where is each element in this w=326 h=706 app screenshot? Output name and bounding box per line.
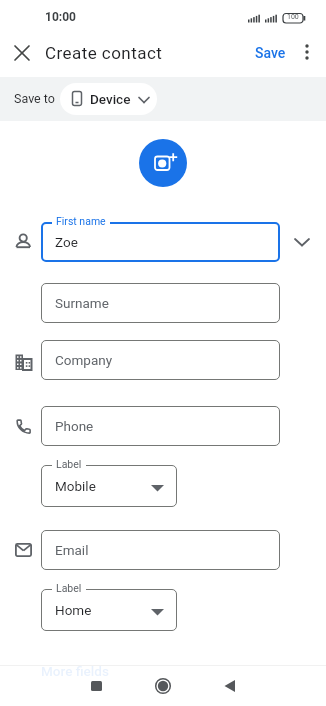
button[interactable] [288,228,316,256]
button[interactable] [139,139,187,187]
button[interactable]: Save [246,38,294,68]
staticText: First name [56,215,106,227]
staticText: Zoe [55,234,78,250]
button[interactable] [294,39,320,65]
button[interactable] [8,39,36,67]
staticText: Label [56,582,82,594]
staticText: Mobile [55,478,96,494]
staticText: Create contact [45,43,163,63]
button[interactable] [209,672,249,700]
button[interactable] [76,672,116,700]
staticText: Save [255,45,286,61]
staticText: Phone [55,418,94,434]
staticText: Email [55,542,89,558]
button[interactable]: Zoe [41,222,280,262]
staticText: 100 [287,13,299,21]
staticText: 10:00 [45,10,76,24]
staticText: Device [90,91,131,107]
button[interactable] [143,672,183,700]
staticText: Label [56,458,82,470]
button[interactable]: Home [41,589,177,631]
staticText: Company [55,352,113,368]
button[interactable]: Phone [41,406,280,446]
button[interactable]: Surname [41,283,280,323]
staticText: Surname [55,295,109,311]
staticText: Home [55,602,92,618]
button[interactable]: Device [60,83,157,115]
button[interactable]: Company [41,340,280,380]
staticText: More fields [41,663,109,679]
button[interactable]: Mobile [41,465,177,507]
button[interactable]: Email [41,530,280,570]
staticText: Save to [14,91,55,106]
